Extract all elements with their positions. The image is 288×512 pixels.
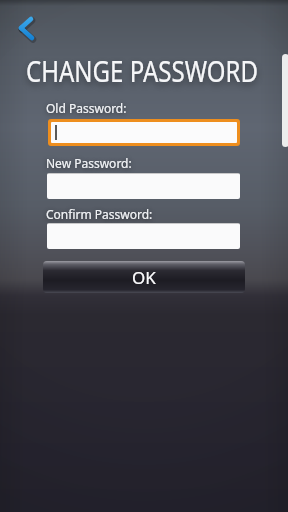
- button[interactable]: [47, 173, 240, 199]
- button[interactable]: [47, 223, 240, 249]
- button[interactable]: [8, 10, 44, 46]
- button[interactable]: OK: [43, 261, 245, 293]
- staticText: CHANGE PASSWORD: [0, 50, 286, 91]
- staticText: Old Password:: [46, 100, 127, 116]
- staticText: New Password:: [46, 155, 132, 171]
- staticText: OK: [132, 266, 156, 289]
- button[interactable]: [48, 119, 240, 146]
- staticText: Confirm Password:: [46, 206, 153, 222]
